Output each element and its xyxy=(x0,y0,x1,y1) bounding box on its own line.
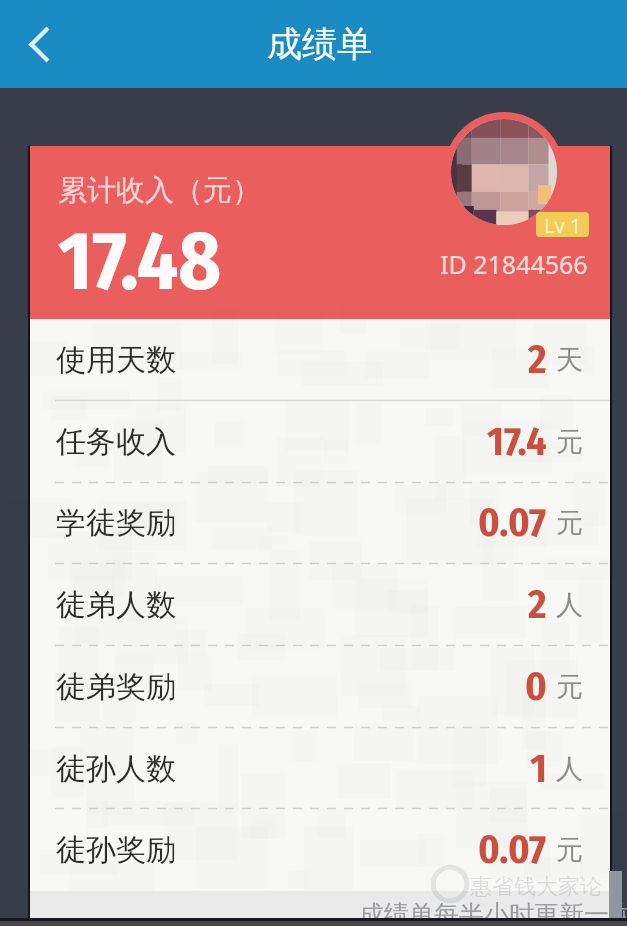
button[interactable]: Back xyxy=(6,0,72,88)
staticText: 惠省钱大家论 xyxy=(470,873,602,901)
staticText: ID 21844566 xyxy=(440,247,588,281)
staticText: 学徒奖励 xyxy=(56,504,176,542)
staticText: 元 xyxy=(556,425,583,459)
staticText: 1 xyxy=(530,745,547,793)
staticText: 0.07 xyxy=(478,826,547,874)
button[interactable]: 徒弟人数 xyxy=(30,564,610,646)
staticText: 元 xyxy=(556,506,583,540)
staticText: 徒孙奖励 xyxy=(56,831,176,869)
staticText: 徒弟奖励 xyxy=(56,668,176,706)
staticText: Lv 1 xyxy=(544,212,582,237)
staticText: 人 xyxy=(556,752,583,786)
button[interactable]: Lv 1 xyxy=(536,212,589,237)
staticText: 17.48 xyxy=(58,213,222,310)
button[interactable]: 任务收入 xyxy=(30,401,610,483)
staticText: 17.4 xyxy=(487,418,547,466)
button[interactable]: 学徒奖励 xyxy=(30,482,610,564)
staticText: 2 xyxy=(528,581,547,629)
staticText: 元 xyxy=(556,833,583,867)
staticText: 成绩单每半小时更新一次 xyxy=(359,899,627,926)
staticText: 徒孙人数 xyxy=(56,750,176,788)
staticText: 人 xyxy=(556,588,583,622)
staticText: 成绩单 xyxy=(267,22,372,66)
staticText: 累计收入（元） xyxy=(58,172,261,209)
staticText: 0 xyxy=(525,663,547,711)
staticText: 元 xyxy=(556,670,583,704)
staticText: 使用天数 xyxy=(56,341,176,379)
button[interactable]: 使用天数 xyxy=(30,319,610,401)
button[interactable]: 徒弟奖励 xyxy=(30,646,610,728)
staticText: 2 xyxy=(528,336,547,384)
button[interactable]: 徒孙奖励 xyxy=(30,809,610,891)
button[interactable]: Profile photo xyxy=(444,112,564,232)
staticText: 0.07 xyxy=(478,499,547,547)
button[interactable]: 徒孙人数 xyxy=(30,728,610,810)
staticText: 任务收入 xyxy=(56,423,176,461)
staticText: 徒弟人数 xyxy=(56,586,176,624)
staticText: 天 xyxy=(556,343,583,377)
